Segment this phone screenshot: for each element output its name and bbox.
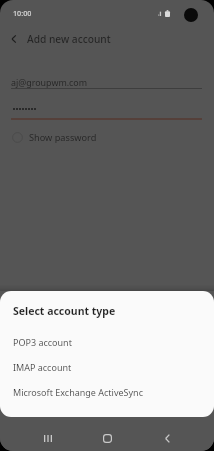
button[interactable]: IMAP account — [0, 354, 214, 379]
staticText: 10:00 — [13, 8, 32, 18]
button[interactable]: Recents — [31, 422, 64, 451]
staticText: POP3 account — [13, 336, 72, 348]
staticText: Show password — [29, 131, 97, 144]
button[interactable]: Show password — [0, 128, 214, 146]
button[interactable]: POP3 account — [0, 329, 214, 354]
button[interactable]: Back — [151, 422, 184, 451]
staticText: Add new account — [27, 32, 111, 46]
button[interactable]: Navigate up — [0, 26, 27, 52]
staticText: aj@groupwm.com — [11, 76, 88, 88]
staticText: IMAP account — [13, 361, 72, 373]
staticText: Select account type — [13, 304, 116, 318]
button[interactable]: Microsoft Exchange ActiveSync — [0, 379, 214, 404]
button[interactable]: Home — [91, 422, 124, 451]
staticText: Microsoft Exchange ActiveSync — [13, 386, 143, 398]
